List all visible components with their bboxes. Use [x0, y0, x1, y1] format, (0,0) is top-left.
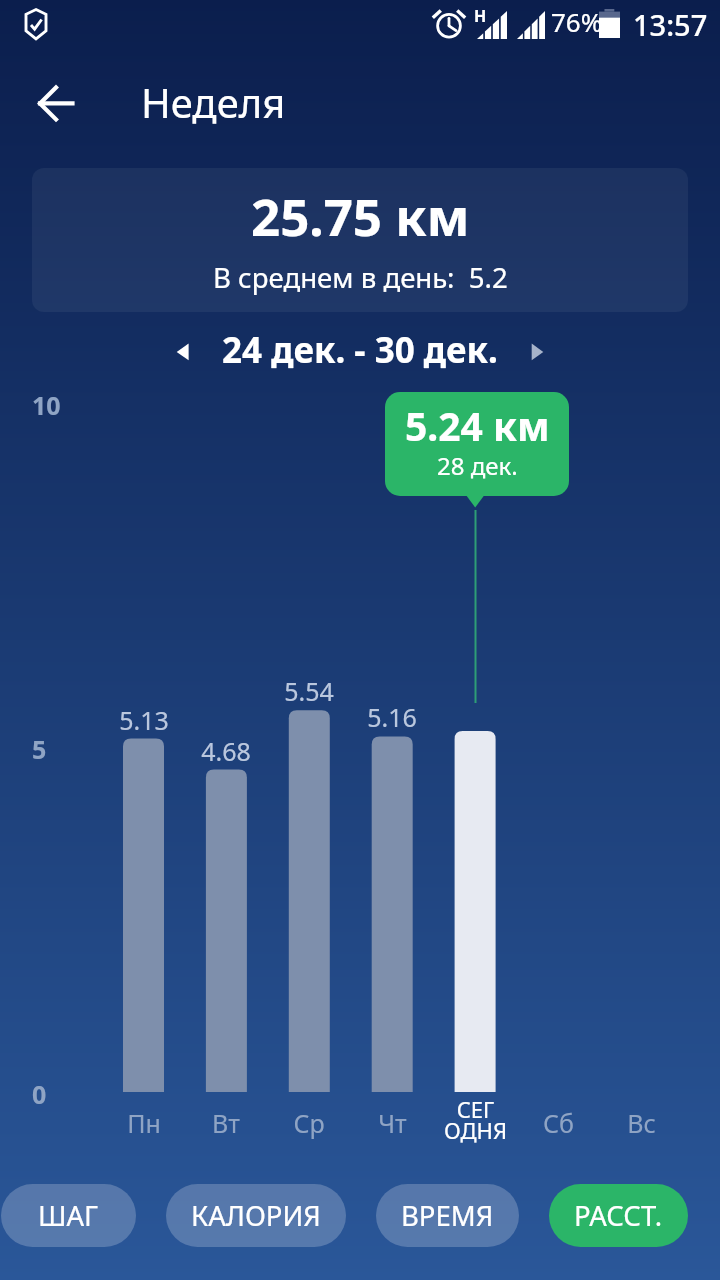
button[interactable]: 25.75 км [32, 168, 688, 312]
button[interactable]: РАССТ. [549, 1184, 688, 1247]
staticText: 5 [32, 732, 47, 766]
staticText: 0 [32, 1077, 47, 1111]
button[interactable]: 5.24 км [385, 392, 569, 496]
staticText: Вт [212, 1106, 240, 1140]
staticText: 24 дек. - 30 дек. [222, 326, 498, 374]
staticText: 4.68 [201, 734, 251, 768]
staticText: РАССТ. [574, 1197, 663, 1234]
button[interactable]: ШАГ [1, 1184, 136, 1247]
staticText: СЕГ ОДНЯ [444, 1094, 507, 1146]
staticText: Вс [627, 1106, 656, 1140]
button[interactable]: Back [24, 75, 88, 139]
button[interactable]: Previous week [155, 328, 203, 376]
button[interactable]: ВРЕМЯ [376, 1184, 519, 1247]
staticText: H [474, 5, 487, 27]
staticText: ШАГ [38, 1197, 99, 1234]
staticText: Сб [543, 1106, 574, 1140]
staticText: 5.13 [119, 703, 169, 737]
staticText: Пн [127, 1106, 161, 1140]
staticText: 13:57 [633, 5, 708, 44]
staticText: 28 дек. [437, 449, 518, 482]
staticText: КАЛОРИЯ [191, 1197, 321, 1234]
staticText: В среднем в день: 5.2 [213, 258, 508, 296]
staticText: ВРЕМЯ [401, 1197, 494, 1234]
button[interactable]: Next week [508, 328, 556, 376]
staticText: 5.16 [367, 700, 417, 734]
button[interactable]: КАЛОРИЯ [166, 1184, 346, 1247]
staticText: 5.54 [284, 674, 334, 708]
staticText: Неделя [141, 75, 286, 129]
staticText: 10 [32, 388, 61, 422]
staticText: 25.75 км [251, 181, 470, 250]
staticText: Ср [293, 1106, 325, 1140]
staticText: Чт [378, 1106, 407, 1140]
staticText: 5.24 км [405, 399, 550, 452]
staticText: 76% [551, 4, 603, 39]
